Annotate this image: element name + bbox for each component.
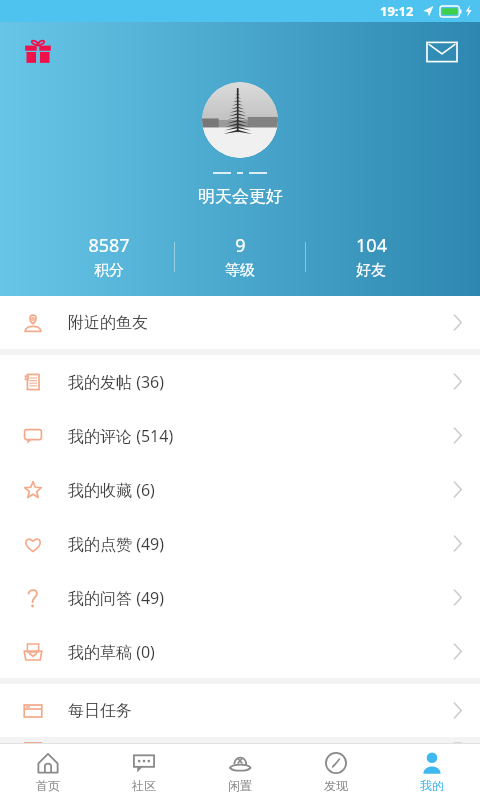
button[interactable]: 附近的鱼友 <box>0 296 480 349</box>
button[interactable]: 我的问答 (49) <box>0 571 480 624</box>
staticText: 我的问答 (49) <box>68 587 165 609</box>
button[interactable]: 首页 <box>0 744 96 800</box>
staticText: 社区 <box>132 778 156 793</box>
button[interactable]: 每日任务 <box>0 684 480 737</box>
button[interactable]: Gifts <box>16 30 60 74</box>
staticText: 等级 <box>225 261 255 280</box>
staticText: 我的 <box>420 778 444 793</box>
button[interactable]: 我的草稿 (0) <box>0 625 480 678</box>
staticText: 9 <box>235 233 246 258</box>
staticText: 8587 <box>88 233 130 258</box>
staticText: 104 <box>356 233 387 258</box>
button[interactable]: 8587 <box>44 233 174 280</box>
staticText: 我的点赞 (49) <box>68 533 165 555</box>
button[interactable]: 我的点赞 (49) <box>0 517 480 570</box>
staticText: 我的评论 (514) <box>68 425 174 447</box>
button[interactable]: 发现 <box>288 744 384 800</box>
button[interactable]: 我的评论 (514) <box>0 409 480 462</box>
staticText: 附近的鱼友 <box>68 313 148 333</box>
button[interactable]: Messages <box>420 30 464 74</box>
staticText: 我的草稿 (0) <box>68 641 155 663</box>
staticText: 好友 <box>356 261 386 280</box>
staticText: 首页 <box>36 778 60 793</box>
staticText: 明天会更好 <box>198 186 283 207</box>
button[interactable]: 闲置 <box>192 744 288 800</box>
button[interactable]: 我的收藏 (6) <box>0 463 480 516</box>
staticText: 每日任务 <box>68 701 132 721</box>
button[interactable]: 104 <box>306 233 436 280</box>
button[interactable]: 9 <box>175 233 305 280</box>
staticText: 我的发帖 (36) <box>68 371 165 393</box>
staticText: 积分 <box>94 261 124 280</box>
staticText: 我的收藏 (6) <box>68 479 155 501</box>
staticText: 19:12 <box>380 2 414 20</box>
staticText: 发现 <box>324 778 348 793</box>
button[interactable]: 我的 <box>384 744 480 800</box>
button[interactable]: Avatar <box>202 82 278 158</box>
button[interactable]: 社区 <box>96 744 192 800</box>
staticText: 闲置 <box>228 778 252 793</box>
button[interactable]: 我的发帖 (36) <box>0 355 480 408</box>
